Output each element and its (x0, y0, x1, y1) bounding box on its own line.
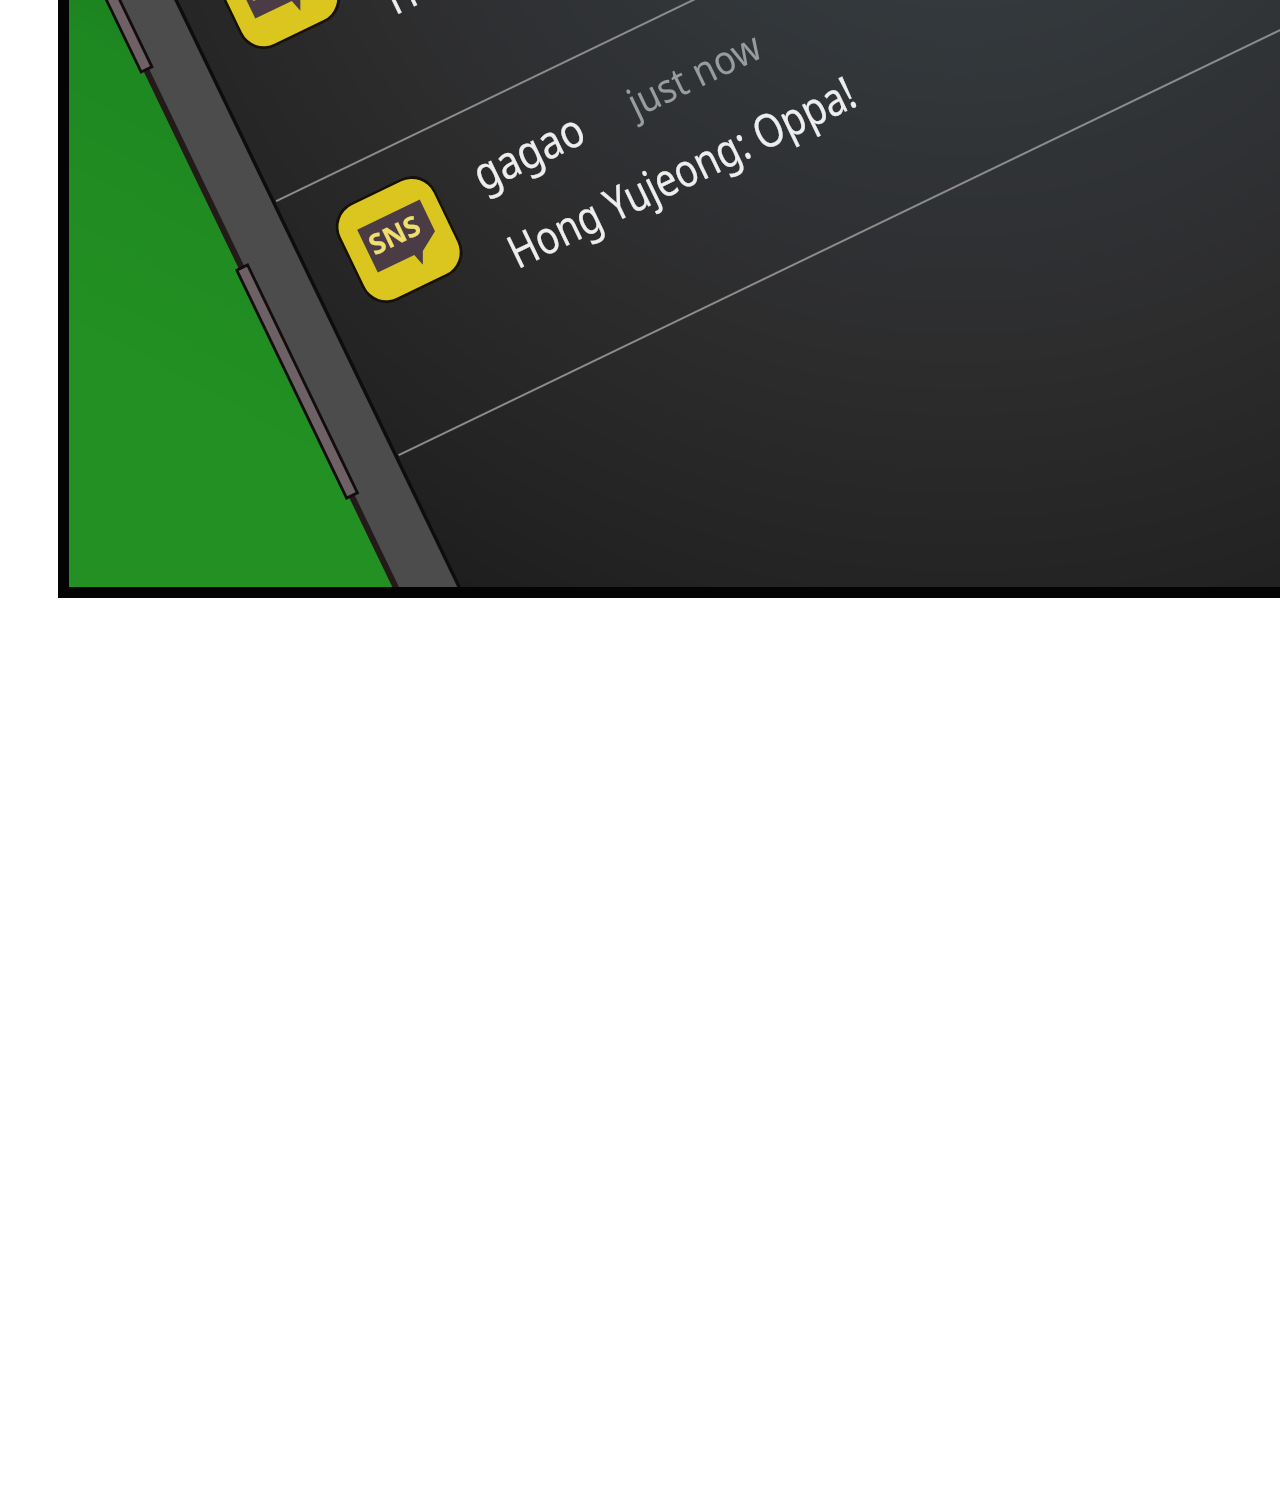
button[interactable]: gagao, just now, Hong Yujeong: Oppa! (203, 0, 750, 94)
button[interactable]: Empty notification row (420, 330, 1120, 580)
button[interactable]: gagao, just now, Hong Yujeong: Oppa! (325, 0, 872, 348)
